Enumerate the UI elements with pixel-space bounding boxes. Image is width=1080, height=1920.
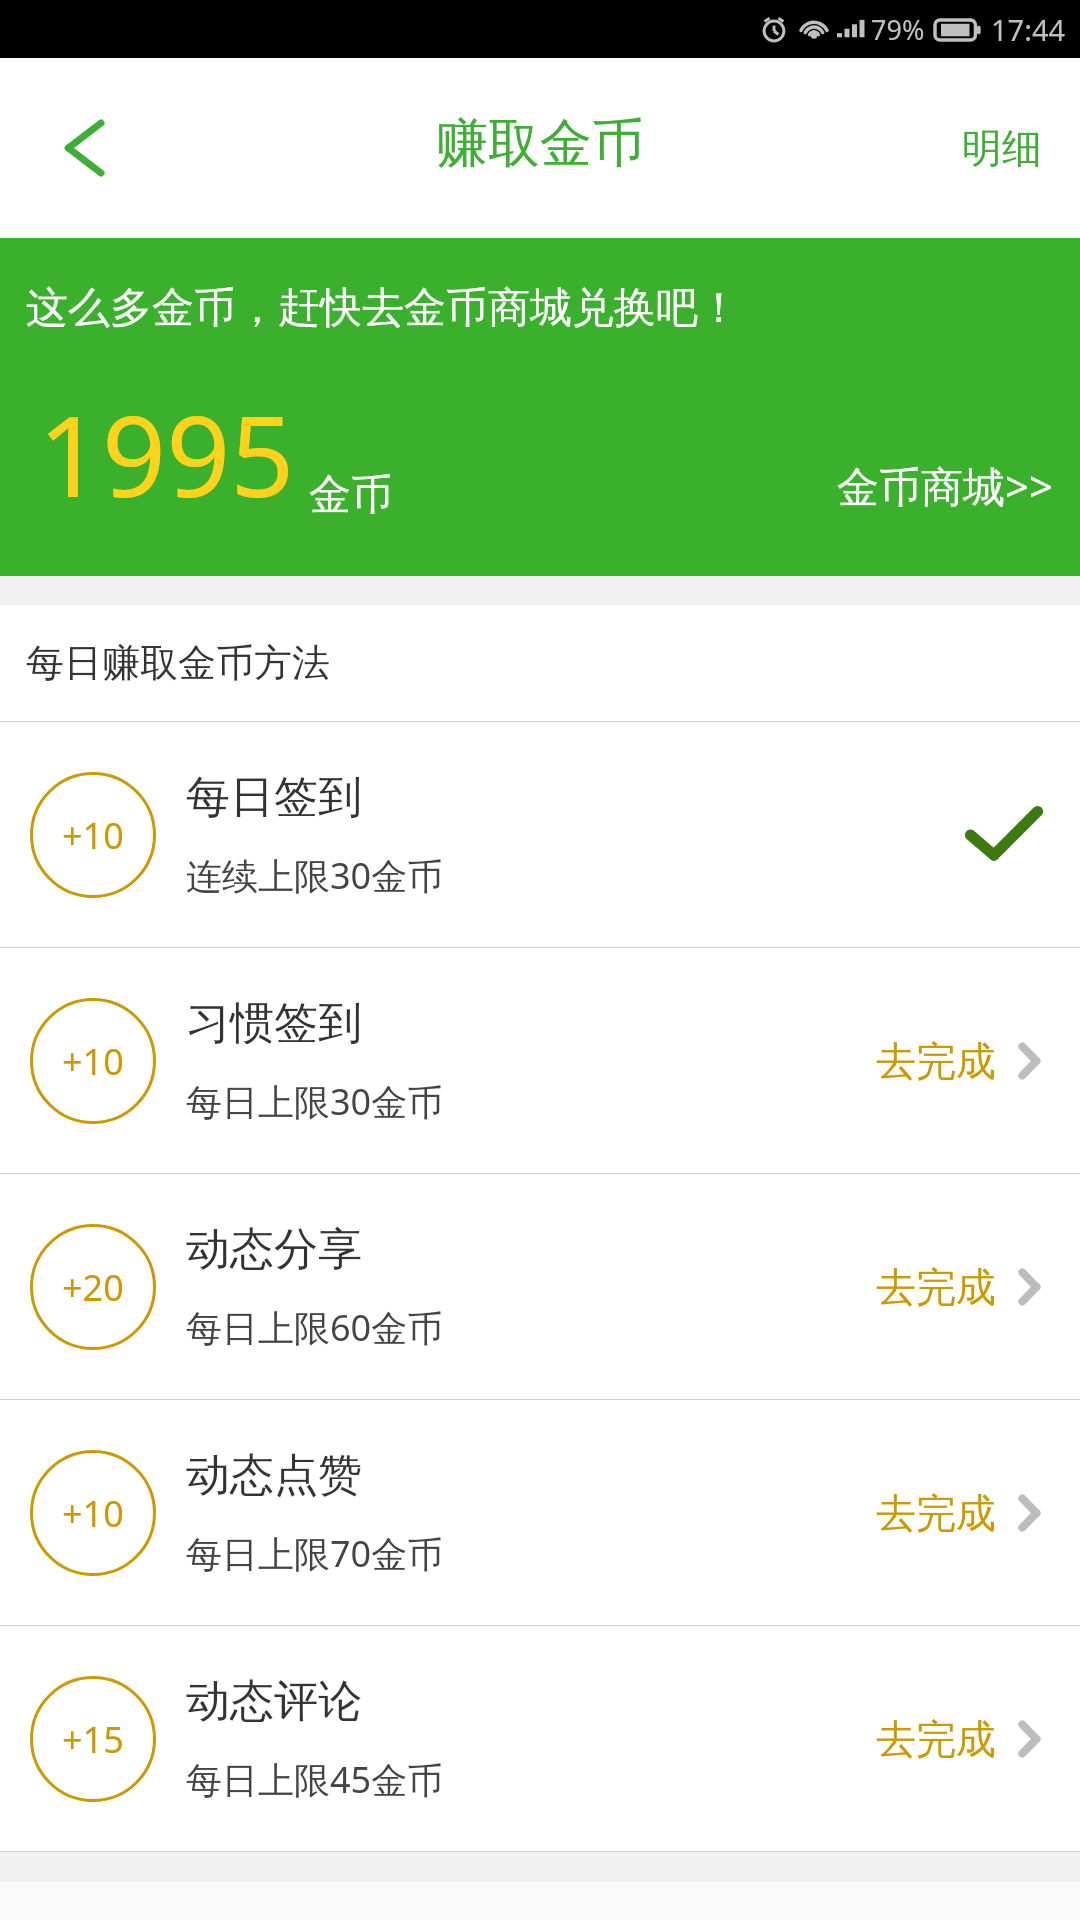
staticText: 去完成 (876, 1036, 996, 1086)
button[interactable]: +20 (0, 1174, 1080, 1399)
staticText: 每日签到 (186, 770, 362, 825)
button[interactable]: +15 (0, 1626, 1080, 1851)
staticText: 动态分享 (186, 1222, 362, 1277)
staticText: 每日上限45金币 (186, 1755, 444, 1804)
staticText: 1995 (38, 377, 295, 530)
staticText: +10 (62, 1489, 124, 1538)
staticText: 这么多金币，赶快去金币商城兑换吧！ (26, 282, 740, 335)
staticText: +15 (62, 1715, 124, 1764)
staticText: 去完成 (876, 1262, 996, 1312)
staticText: 每日赚取金币方法 (26, 639, 330, 687)
staticText: 每日上限30金币 (186, 1077, 444, 1126)
staticText: +20 (62, 1263, 124, 1312)
staticText: 明细 (962, 123, 1042, 173)
staticText: +10 (62, 811, 124, 860)
button[interactable]: 明细 (924, 103, 1080, 193)
other: Completed (962, 793, 1046, 877)
staticText: 动态点赞 (186, 1448, 362, 1503)
staticText: 去完成 (876, 1488, 996, 1538)
staticText: 赚取金币 (436, 111, 644, 177)
staticText: 17:44 (991, 10, 1066, 49)
staticText: +10 (62, 1037, 124, 1086)
staticText: 每日上限60金币 (186, 1303, 444, 1352)
button[interactable]: Back (30, 100, 126, 196)
staticText: 去完成 (876, 1714, 996, 1764)
button[interactable]: +10 (0, 1400, 1080, 1625)
staticText: 金币 (309, 469, 393, 522)
button[interactable]: 金币商城>> (837, 457, 1080, 576)
staticText: 动态评论 (186, 1674, 362, 1729)
button[interactable]: +10 (0, 722, 1080, 947)
staticText: 79% (871, 11, 925, 48)
staticText: 连续上限30金币 (186, 851, 444, 900)
staticText: 金币商城>> (837, 457, 1054, 514)
button[interactable]: +10 (0, 948, 1080, 1173)
staticText: 每日上限70金币 (186, 1529, 444, 1578)
staticText: 习惯签到 (186, 996, 362, 1051)
